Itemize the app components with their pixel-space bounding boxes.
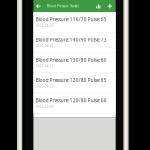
staticText: Blood Pressure: 140/90 Pulse: 73 [36,37,107,43]
staticText: Blood Pressure: 116/70 Pulse: 65 [36,17,107,23]
staticText: Blood Pressure Tracker [47,4,79,8]
staticText: Blood Pressure: 120/80 Pulse: 65 [36,77,107,83]
button[interactable]: Back [33,0,47,12]
button[interactable]: Blood Pressure: 130/80 Pulse: 80 [33,53,116,73]
staticText: 2020-04-23 [36,84,54,88]
button[interactable]: Add reading [104,0,116,12]
staticText: Blood Pressure: 130/80 Pulse: 80 [36,57,107,63]
staticText: Blood Pressure: 120/80 Pulse: 66 [36,98,107,104]
button[interactable]: Blood Pressure: 120/80 Pulse: 66 [33,93,116,113]
button[interactable]: Statistics [92,0,104,12]
button[interactable]: Blood Pressure: 116/70 Pulse: 65 [33,12,116,32]
staticText: 2020-04-20 [36,24,54,28]
staticText: 2020-04-21 [36,44,54,48]
button[interactable]: Blood Pressure: 120/80 Pulse: 65 [33,73,116,93]
button[interactable]: Blood Pressure: 140/90 Pulse: 73 [33,32,116,52]
staticText: 2020-04-22 [36,64,54,68]
staticText: 2020-03-09 [36,105,54,109]
